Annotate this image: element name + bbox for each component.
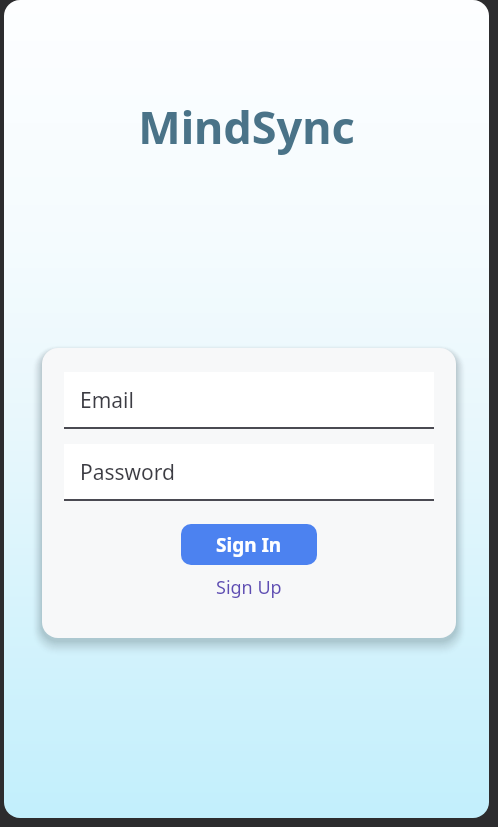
staticText: Sign In	[216, 532, 282, 558]
staticText: Email	[80, 386, 134, 415]
staticText: Sign Up	[216, 575, 282, 600]
button[interactable]: Password	[64, 444, 434, 502]
staticText: MindSync	[138, 96, 355, 157]
button[interactable]: Email	[64, 372, 434, 430]
staticText: Password	[80, 458, 175, 487]
button[interactable]: Sign In	[181, 524, 317, 565]
button[interactable]: Sign Up	[210, 574, 288, 601]
